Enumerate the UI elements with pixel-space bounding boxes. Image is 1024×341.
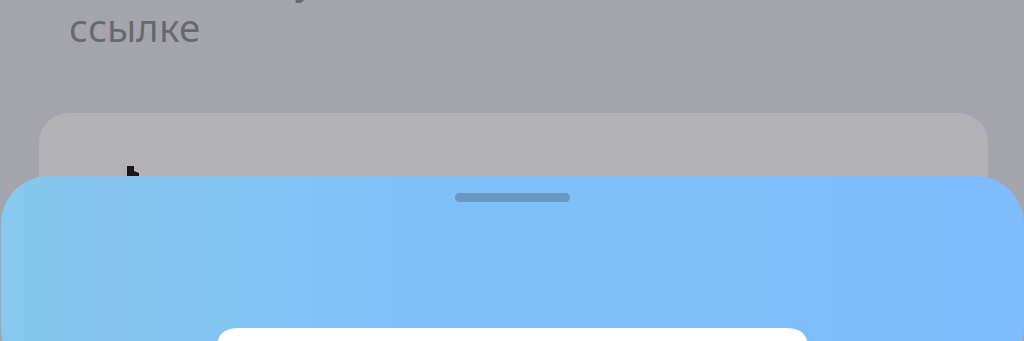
button[interactable]: Dismiss sheet — [455, 193, 570, 202]
staticText: у — [295, 0, 315, 5]
staticText: ссылке — [69, 1, 200, 53]
button[interactable]: Open link — [216, 328, 808, 341]
